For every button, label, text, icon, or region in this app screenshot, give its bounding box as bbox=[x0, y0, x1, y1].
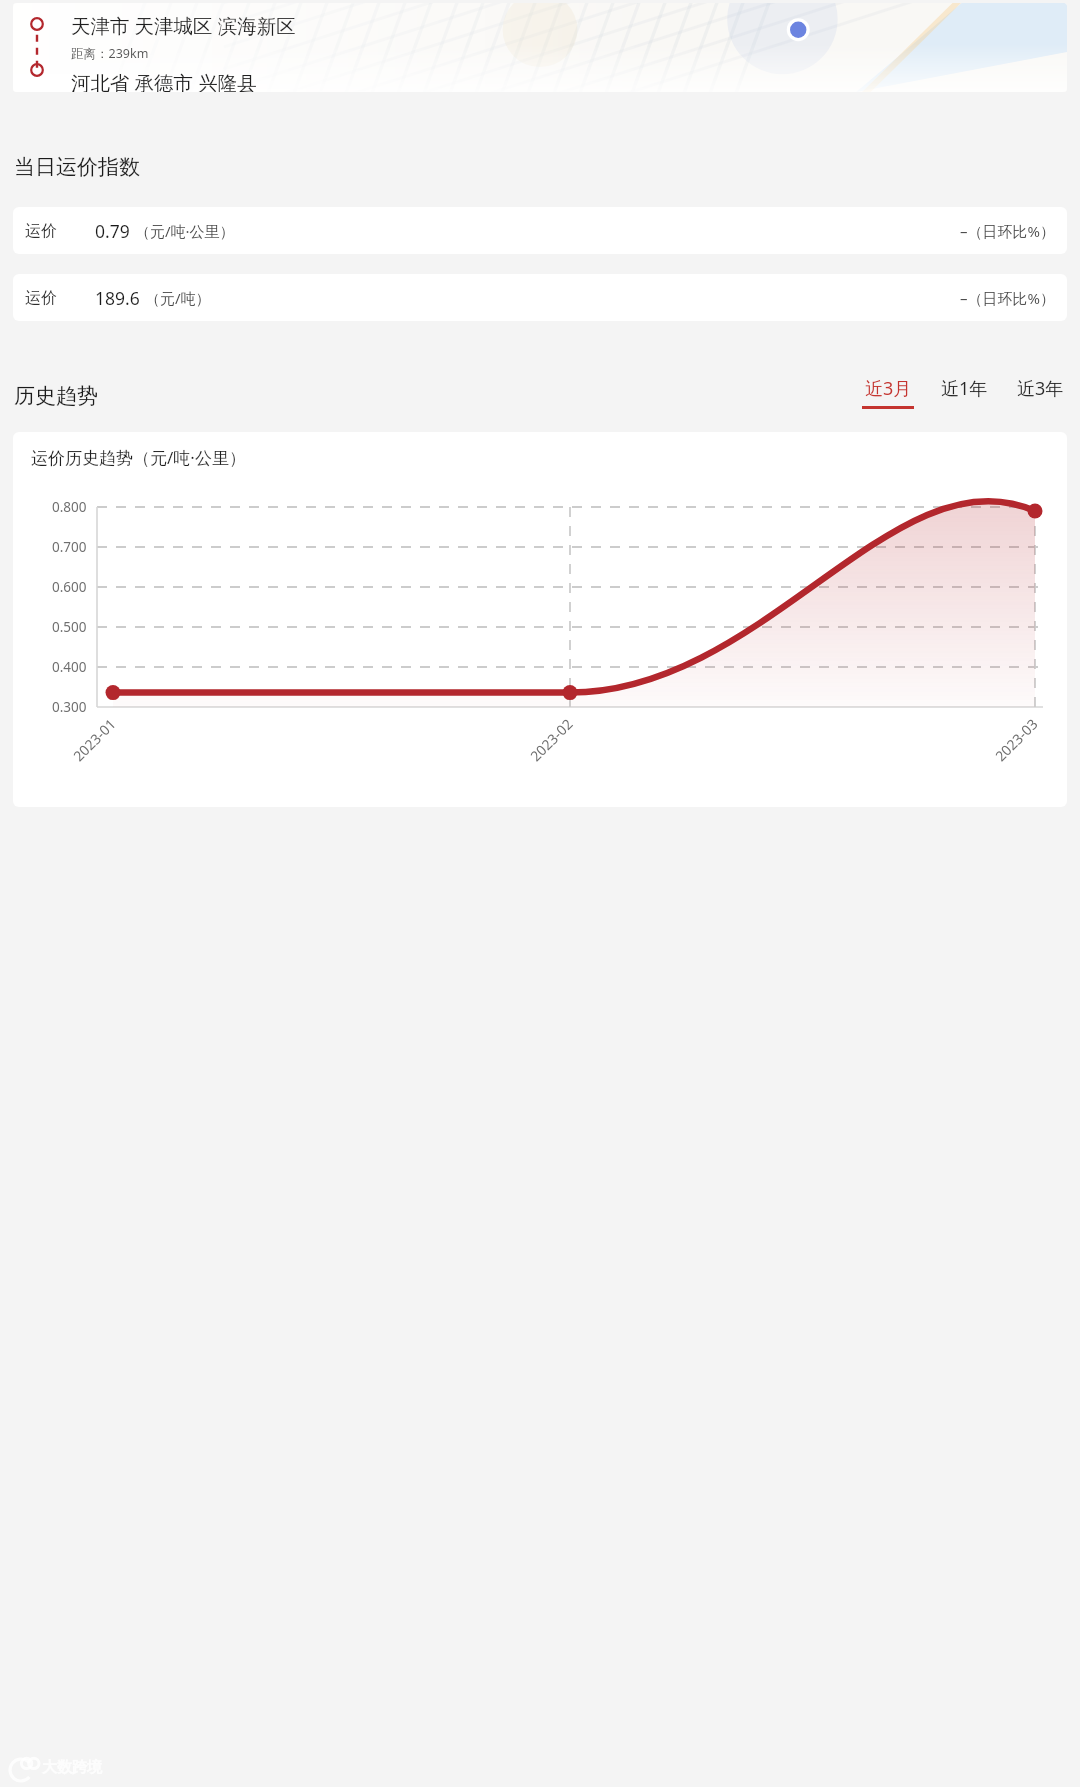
staticText: 天津市 天津城区 滨海新区 bbox=[71, 12, 296, 39]
button[interactable]: 天津市 天津城区 滨海新区 bbox=[13, 3, 1067, 92]
staticText: 189.6 bbox=[95, 286, 140, 310]
staticText: 近3年 bbox=[1017, 376, 1064, 401]
staticText: 近1年 bbox=[941, 376, 988, 401]
staticText: 近3月 bbox=[865, 376, 912, 401]
button[interactable]: 近3月 bbox=[860, 376, 916, 409]
staticText: 运价 bbox=[25, 288, 57, 308]
staticText: 距离：239km bbox=[71, 45, 149, 62]
button[interactable]: 近3年 bbox=[1012, 376, 1068, 409]
staticText: –（日环比%） bbox=[960, 288, 1055, 308]
staticText: （元/吨） bbox=[145, 288, 211, 308]
staticText: 河北省 承德市 兴隆县 bbox=[71, 69, 257, 92]
other: 大数跨境 watermark bbox=[8, 1757, 102, 1777]
staticText: 当日运价指数 bbox=[14, 154, 140, 180]
staticText: 大数跨境 bbox=[42, 1758, 102, 1777]
button[interactable]: 近1年 bbox=[936, 376, 992, 409]
staticText: （元/吨·公里） bbox=[135, 221, 235, 241]
button[interactable]: 运价 bbox=[13, 274, 1067, 321]
staticText: –（日环比%） bbox=[960, 221, 1055, 241]
staticText: 运价 bbox=[25, 221, 57, 241]
staticText: 0.79 bbox=[95, 219, 130, 243]
staticText: 历史趋势 bbox=[14, 383, 98, 409]
button[interactable]: 运价 bbox=[13, 207, 1067, 254]
staticText: 运价历史趋势（元/吨·公里） bbox=[31, 446, 246, 469]
